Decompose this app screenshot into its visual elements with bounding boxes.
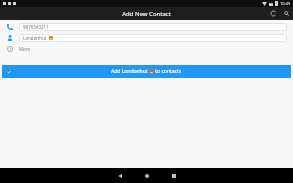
button[interactable]: Refresh — [267, 7, 280, 20]
staticText: 10:49 — [280, 1, 291, 6]
button[interactable]: Add Londonhut — [2, 65, 291, 78]
staticText: Add New Contact — [122, 10, 171, 18]
button[interactable]: Contact name — [0, 32, 293, 43]
button[interactable]: Search — [280, 7, 293, 20]
button[interactable]: Phone number — [0, 21, 293, 32]
button[interactable]: Recents — [166, 168, 182, 183]
staticText: 9876543211 — [23, 24, 49, 30]
button[interactable]: More — [0, 43, 293, 54]
staticText: to contacts — [154, 68, 182, 75]
staticText: Add Londonhut — [111, 68, 149, 75]
button[interactable]: Back — [112, 168, 128, 183]
button[interactable]: Confirm — [6, 69, 12, 75]
staticText: Londonhut — [23, 35, 47, 41]
staticText: More — [19, 46, 31, 52]
button[interactable]: Home — [139, 168, 155, 183]
